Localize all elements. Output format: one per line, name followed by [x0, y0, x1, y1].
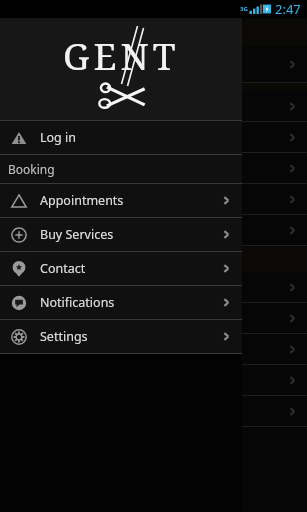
button[interactable]: GENT Men's Cut — [0, 184, 307, 214]
staticText: GENT Style — [8, 159, 286, 177]
staticText: GENT "Best Man" Massage - 60 min — [8, 309, 286, 327]
staticText: GENT Gentleman's NEW... — [8, 128, 286, 146]
staticText: 2:47 — [275, 0, 301, 18]
staticText: Appointments — [40, 192, 220, 209]
staticText: Buy Services — [40, 226, 220, 243]
staticText: GENT Men's Cut — [8, 190, 286, 208]
button[interactable]: GENT — [0, 18, 242, 120]
button[interactable]: Appointments — [0, 184, 242, 217]
button[interactable]: Contact — [0, 252, 242, 285]
staticText: Settings — [40, 328, 220, 345]
button[interactable]: GENT "Best Man" Massage - 90 min — [0, 334, 307, 364]
button[interactable]: GENT "Best Man" Massage - 60 min — [0, 303, 307, 333]
staticText: GENT "Best Man" Massage - 90 min — [8, 340, 286, 358]
staticText: Notifications — [40, 294, 220, 311]
button[interactable]: GENT Men's COLOR — [0, 215, 307, 245]
staticText: Booking — [8, 161, 55, 177]
button[interactable]: Log in — [0, 121, 242, 154]
button[interactable]: Buy Services — [0, 218, 242, 251]
button[interactable]: GENT Gentleman's NEW... — [0, 122, 307, 152]
staticText: GENT — [63, 30, 180, 80]
staticText: 3G — [240, 5, 248, 13]
staticText: Contact — [40, 260, 220, 277]
button[interactable]: GENT Straight Razor... — [0, 46, 307, 82]
button[interactable]: GENT Style — [0, 153, 307, 183]
staticText: Log in — [40, 129, 233, 146]
button[interactable]: Notifications — [0, 286, 242, 319]
button[interactable]: Settings — [0, 320, 242, 353]
staticText: GENT Men's COLOR — [8, 221, 286, 239]
button[interactable]: GENT "Best Man" Massage - 120 min — [0, 272, 307, 302]
staticText: GENT Shave — [8, 97, 286, 115]
button[interactable]: GENT Shave — [0, 91, 307, 121]
staticText: GENT Straight Razor... — [8, 55, 286, 73]
staticText: GENT "Best Man" Massage - 120 min — [8, 278, 286, 296]
